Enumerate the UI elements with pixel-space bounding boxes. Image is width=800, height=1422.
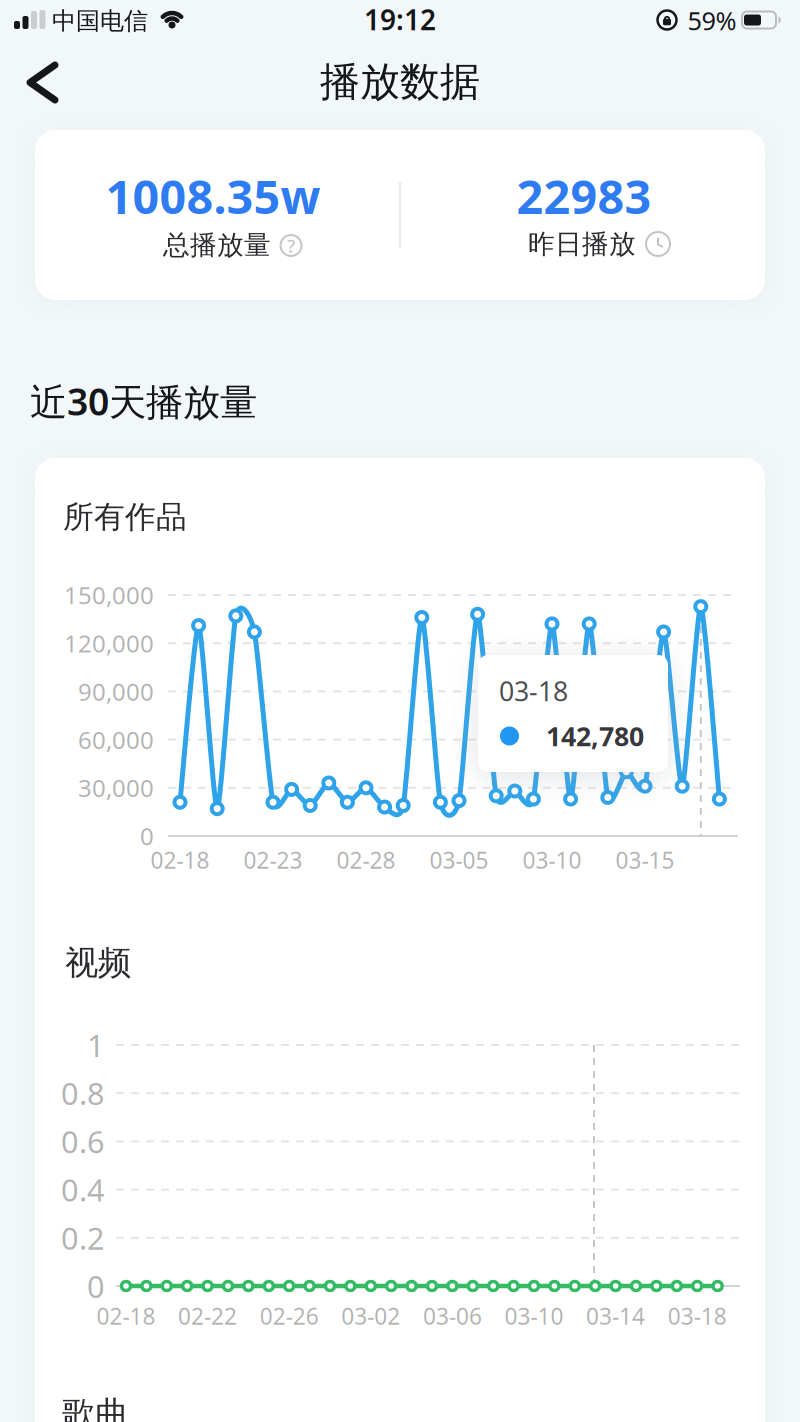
staticText: 近30天播放量 [30, 376, 257, 426]
staticText: 142,780 [546, 718, 644, 754]
staticText: 03-02 [341, 1301, 400, 1331]
staticText: 60,000 [78, 724, 154, 756]
staticText: 1008.35w [105, 165, 320, 227]
staticText: 所有作品 [63, 498, 187, 536]
staticText: 0.6 [61, 1121, 105, 1162]
staticText: 03-06 [423, 1301, 482, 1331]
button[interactable]: Back [0, 56, 76, 109]
staticText: 02-18 [96, 1301, 155, 1331]
staticText: 03-15 [615, 845, 674, 875]
staticText: 02-26 [260, 1301, 319, 1331]
staticText: 昨日播放 [528, 228, 636, 260]
staticText: 22983 [516, 165, 651, 227]
staticText: 02-28 [336, 845, 395, 875]
staticText: 03-14 [586, 1301, 645, 1331]
staticText: 03-05 [429, 845, 488, 875]
staticText: 03-10 [522, 845, 581, 875]
staticText: 03-18 [499, 673, 568, 709]
staticText: 0.8 [61, 1073, 105, 1113]
button[interactable]: 总播放量说明 [278, 232, 304, 258]
staticText: 59% [687, 4, 736, 37]
staticText: 03-10 [504, 1301, 563, 1331]
staticText: ? [287, 233, 295, 258]
staticText: 150,000 [64, 579, 154, 611]
staticText: 1 [87, 1025, 105, 1065]
staticText: 歌曲 [62, 1393, 128, 1422]
staticText: 02-18 [150, 845, 209, 875]
staticText: 0.2 [61, 1217, 105, 1258]
staticText: 总播放量 [163, 229, 271, 261]
staticText: 播放数据 [320, 57, 480, 106]
staticText: 90,000 [78, 675, 154, 707]
staticText: 中国电信 [52, 6, 148, 36]
staticText: 0.4 [61, 1169, 105, 1210]
staticText: 0 [140, 820, 154, 852]
staticText: 02-22 [178, 1301, 237, 1331]
staticText: 19:12 [364, 1, 436, 38]
staticText: 03-18 [668, 1301, 727, 1331]
staticText: 视频 [65, 942, 131, 983]
staticText: 120,000 [64, 627, 154, 659]
staticText: 02-23 [243, 845, 302, 875]
staticText: 0 [87, 1266, 105, 1306]
staticText: 30,000 [78, 772, 154, 804]
